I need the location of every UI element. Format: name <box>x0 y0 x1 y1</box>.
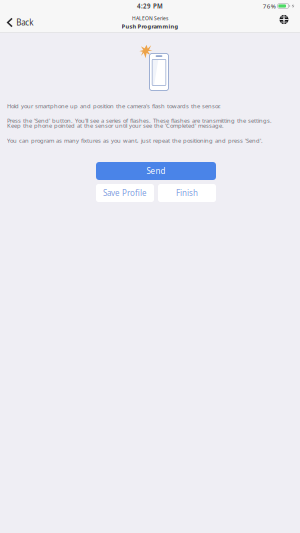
staticText: Back <box>16 17 33 28</box>
staticText: Hold your smartphone up and position the… <box>7 102 221 110</box>
button[interactable]: Back <box>0 12 39 33</box>
staticText: 4:29 PM <box>137 2 163 10</box>
button[interactable]: Finish <box>158 184 216 202</box>
button[interactable]: Save Profile <box>96 184 154 202</box>
button[interactable]: Settings <box>273 12 300 33</box>
staticText: Send <box>146 166 165 176</box>
staticText: Press the 'Send' button. You'll see a se… <box>7 117 272 124</box>
staticText: 76% <box>263 2 276 10</box>
staticText: Push Programming <box>121 22 178 30</box>
staticText: Save Profile <box>103 188 147 198</box>
staticText: You can program as many fixtures as you … <box>7 137 263 144</box>
staticText: Keep the phone pointed at the sensor unt… <box>7 122 224 129</box>
button[interactable]: Send <box>96 162 216 180</box>
staticText: Finish <box>176 188 198 198</box>
staticText: HALEON Series <box>132 15 168 22</box>
